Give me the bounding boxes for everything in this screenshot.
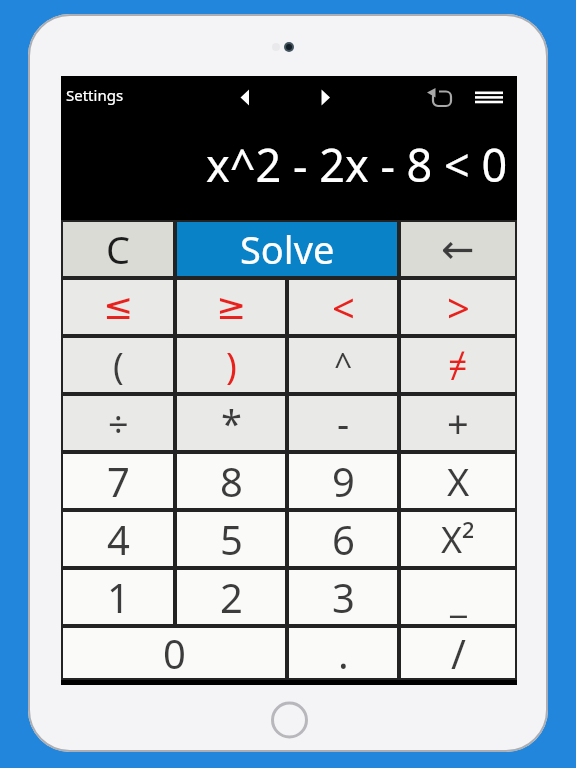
staticText: ( — [113, 341, 124, 390]
staticText: Solve — [240, 223, 335, 275]
button[interactable]: ^ — [287, 336, 399, 394]
staticText: 6 — [332, 512, 355, 566]
staticText: 7 — [107, 454, 130, 508]
button[interactable]: 6 — [287, 510, 399, 568]
button[interactable]: X² — [399, 510, 517, 568]
staticText: + — [447, 397, 469, 449]
button[interactable]: . — [287, 626, 399, 680]
button[interactable]: ≤ — [61, 278, 175, 336]
staticText: 2 — [220, 570, 243, 624]
button[interactable] — [421, 82, 457, 112]
staticText: ≠ — [448, 342, 468, 388]
staticText: X — [447, 455, 470, 507]
button[interactable]: ← — [399, 220, 517, 278]
button[interactable] — [233, 83, 259, 113]
staticText: ← — [441, 226, 475, 273]
button[interactable]: 2 — [175, 568, 287, 626]
staticText: ^ — [334, 343, 353, 387]
button[interactable]: ( — [61, 336, 175, 394]
button[interactable]: 5 — [175, 510, 287, 568]
button[interactable]: 8 — [175, 452, 287, 510]
button[interactable]: X — [399, 452, 517, 510]
staticText: - — [337, 397, 350, 449]
staticText: 8 — [220, 454, 243, 508]
button[interactable]: > — [399, 278, 517, 336]
staticText: > — [447, 280, 470, 334]
button[interactable] — [313, 83, 339, 113]
button[interactable] — [468, 82, 510, 112]
staticText: 5 — [220, 512, 243, 566]
button[interactable]: 1 — [61, 568, 175, 626]
button[interactable]: - — [287, 394, 399, 452]
staticText: ≤ — [103, 286, 134, 328]
staticText: . — [338, 626, 349, 680]
staticText: 3 — [332, 570, 355, 624]
button[interactable]: / — [399, 626, 517, 680]
staticText: _ — [450, 571, 467, 623]
staticText: 0 — [163, 626, 186, 680]
button[interactable]: ≠ — [399, 336, 517, 394]
button[interactable]: * — [175, 394, 287, 452]
staticText: / — [451, 626, 466, 680]
button[interactable]: Solve — [175, 220, 399, 278]
staticText: 1 — [107, 570, 130, 624]
button[interactable]: 4 — [61, 510, 175, 568]
staticText: 4 — [107, 512, 130, 566]
button[interactable]: _ — [399, 568, 517, 626]
button[interactable]: 9 — [287, 452, 399, 510]
staticText: < — [332, 280, 355, 334]
staticText: X² — [441, 515, 475, 564]
button[interactable]: ≥ — [175, 278, 287, 336]
button[interactable]: 7 — [61, 452, 175, 510]
staticText: ) — [226, 341, 237, 390]
staticText: C — [106, 223, 131, 275]
button[interactable]: 0 — [61, 626, 287, 680]
staticText: ≥ — [216, 286, 247, 328]
staticText: * — [221, 397, 242, 449]
button[interactable]: ) — [175, 336, 287, 394]
staticText: x^2 - 2x - 8 < 0 — [206, 134, 508, 195]
button[interactable]: C — [61, 220, 175, 278]
staticText: 9 — [332, 454, 355, 508]
button[interactable]: 3 — [287, 568, 399, 626]
staticText: ÷ — [108, 399, 129, 448]
button[interactable]: < — [287, 278, 399, 336]
button[interactable]: + — [399, 394, 517, 452]
button[interactable]: ÷ — [61, 394, 175, 452]
button[interactable]: Settings — [66, 85, 124, 105]
